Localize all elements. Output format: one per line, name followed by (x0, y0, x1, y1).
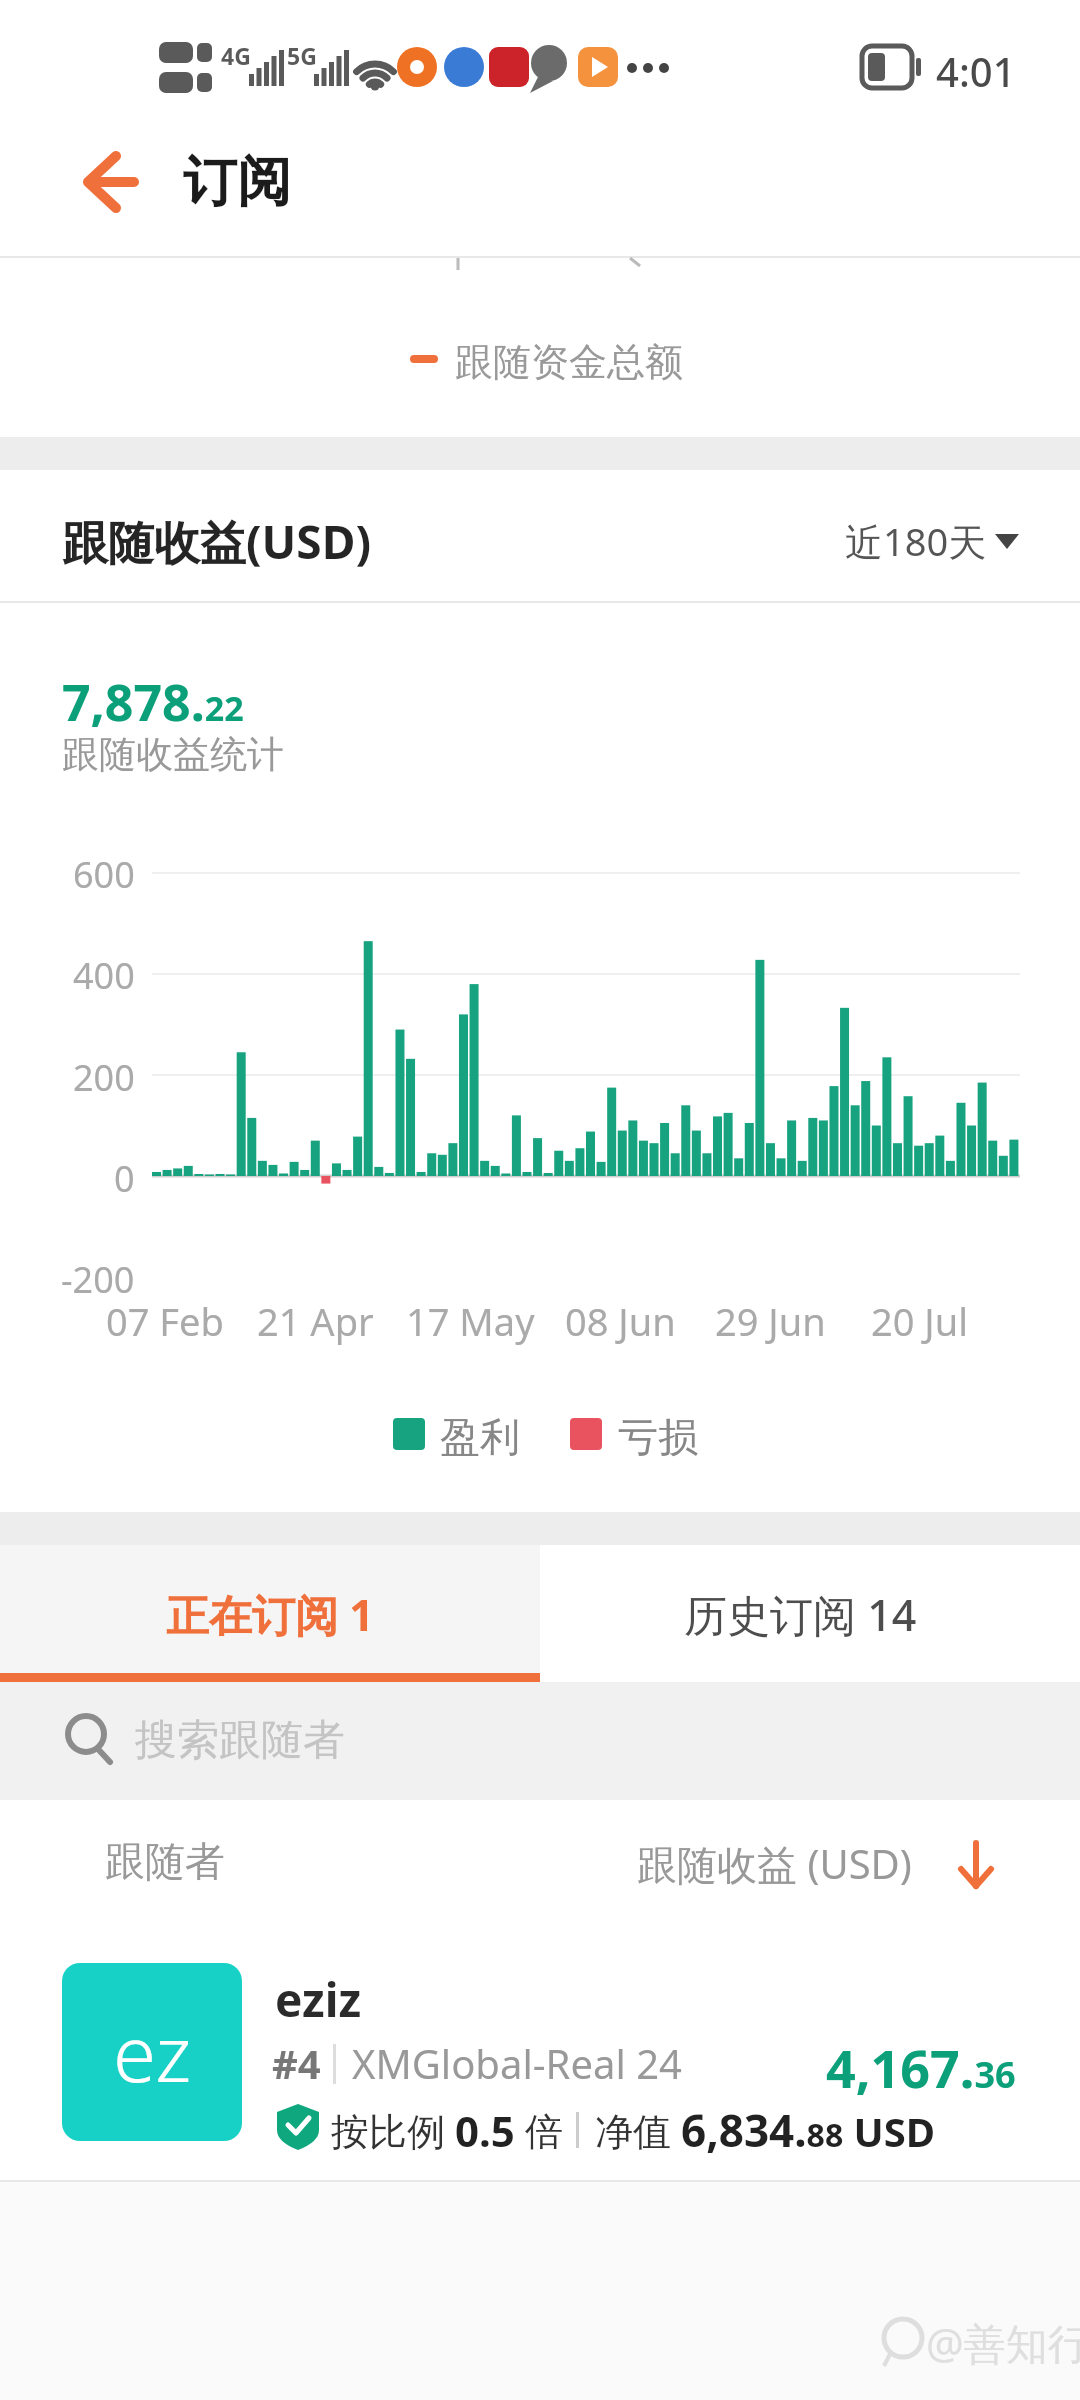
button[interactable] (0, 1930, 1080, 2180)
staticText: 历史订阅 14 (684, 1585, 917, 1644)
staticText: 20 Jul (871, 1295, 969, 1347)
staticText: 近180天 (845, 515, 987, 567)
staticText: 200 (73, 1053, 135, 1102)
staticText: 17 May (406, 1295, 535, 1347)
staticText: @善知行 (926, 2314, 1080, 2371)
staticText: 盈利 (440, 1412, 520, 1462)
staticText: 搜索跟随者 (135, 1714, 345, 1767)
staticText: 600 (73, 850, 135, 899)
staticText: 07 Feb (106, 1295, 224, 1347)
staticText: #4 (272, 2036, 321, 2090)
staticText: 净值 (595, 2104, 681, 2156)
staticText: 跟随者 (105, 1836, 225, 1886)
staticText: 正在订阅 1 (166, 1585, 374, 1644)
staticText: 按比例 (331, 2104, 455, 2156)
staticText: ez (113, 1999, 192, 2105)
button[interactable] (820, 500, 1040, 570)
staticText: 08 Jun (565, 1295, 676, 1347)
staticText: 4:01 (936, 44, 1016, 98)
button[interactable] (60, 140, 160, 230)
staticText: 6,834.88 USD (681, 2100, 936, 2160)
staticText: 跟随收益 (USD) (637, 1836, 912, 1891)
staticText: 跟随收益统计 (62, 731, 284, 778)
staticText: 亏损 (618, 1412, 698, 1462)
staticText: 4G (221, 40, 251, 71)
staticText: XMGlobal-Real 24 (352, 2036, 682, 2090)
button[interactable] (540, 1545, 1080, 1673)
staticText: 倍 (515, 2104, 563, 2156)
button[interactable] (0, 1545, 540, 1673)
staticText: 跟随资金总额 (455, 338, 683, 386)
staticText: 订阅 (183, 148, 291, 216)
staticText: 5G (287, 40, 317, 71)
staticText: 0 (114, 1154, 135, 1203)
staticText: eziz (275, 1968, 362, 2031)
staticText: 跟随收益(USD) (62, 510, 371, 573)
staticText: 400 (73, 951, 135, 1000)
staticText: 7,878.22 (62, 668, 244, 736)
staticText: 29 Jun (715, 1295, 826, 1347)
staticText: 21 Apr (257, 1295, 374, 1347)
staticText: 0.5 (455, 2102, 515, 2159)
staticText: -200 (61, 1255, 135, 1304)
staticText: 4,167.36 (826, 2032, 1016, 2103)
button[interactable] (0, 1682, 1080, 1800)
